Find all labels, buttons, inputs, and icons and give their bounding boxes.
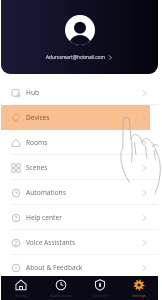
button[interactable]: Automations bbox=[1, 180, 150, 205]
staticText: Hub bbox=[26, 88, 40, 97]
staticText: Automations bbox=[50, 293, 72, 298]
button[interactable]: Settings bbox=[119, 276, 158, 300]
staticText: Rooms bbox=[26, 138, 48, 147]
button[interactable]: Help center bbox=[1, 205, 150, 230]
button[interactable]: Devices bbox=[1, 105, 150, 130]
staticText: Adurosmart@hotmail.com bbox=[46, 54, 105, 60]
staticText: Help center bbox=[26, 213, 62, 222]
staticText: Scenes bbox=[26, 163, 48, 172]
button[interactable]: Hub bbox=[1, 80, 150, 105]
staticText: Rooms bbox=[15, 293, 27, 298]
staticText: Voice Assistants bbox=[26, 238, 76, 247]
staticText: Settings bbox=[132, 293, 146, 298]
staticText: Devices bbox=[26, 113, 50, 122]
staticText: Automations bbox=[26, 188, 66, 197]
button[interactable]: Automations bbox=[41, 276, 80, 300]
button[interactable]: Scenes bbox=[1, 155, 150, 180]
staticText: Security bbox=[93, 293, 107, 298]
button[interactable]: Rooms bbox=[1, 276, 41, 300]
button[interactable]: About & Feedback bbox=[1, 255, 150, 280]
button[interactable]: Security bbox=[80, 276, 119, 300]
staticText: About & Feedback bbox=[26, 263, 83, 272]
button[interactable]: Voice Assistants bbox=[1, 230, 150, 255]
button[interactable]: Rooms bbox=[1, 130, 150, 155]
